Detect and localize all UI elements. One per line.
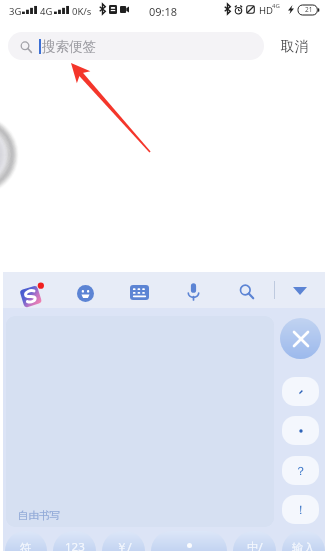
staticText: 4G — [272, 2, 280, 10]
button[interactable]: 符 — [5, 531, 47, 551]
staticText: 123 — [65, 539, 85, 551]
button[interactable]: Hide keyboard — [289, 281, 311, 299]
staticText: 09:18 — [149, 4, 178, 19]
staticText: 符 — [20, 541, 32, 551]
button[interactable]: Emoji — [76, 284, 94, 302]
staticText: 取消 — [281, 38, 308, 55]
staticText: ！ — [295, 502, 307, 517]
button[interactable]: Comma — [282, 377, 319, 406]
button[interactable]: ！ — [282, 495, 319, 524]
button[interactable]: Voice input — [186, 282, 200, 300]
staticText: 0K/s — [72, 5, 92, 18]
button[interactable]: 输入 — [282, 531, 325, 551]
button[interactable]: 123 — [53, 531, 96, 551]
button[interactable]: 搜索便签 — [8, 32, 264, 60]
button[interactable]: Sogou input method — [19, 282, 45, 308]
button[interactable]: Search — [238, 283, 254, 299]
staticText: 自由书写 — [18, 509, 60, 522]
button[interactable]: Keyboard layout — [129, 284, 149, 300]
button[interactable]: ？ — [282, 456, 319, 485]
staticText: 21 — [305, 5, 313, 13]
button[interactable]: 中/ — [233, 531, 276, 551]
staticText: 输入 — [292, 541, 315, 551]
staticText: HD — [259, 4, 273, 17]
staticText: 4G — [40, 5, 53, 18]
button[interactable]: ￥/ — [102, 531, 145, 551]
staticText: ￥/ — [116, 539, 132, 551]
button[interactable]: Period — [282, 416, 319, 445]
staticText: 搜索便签 — [42, 38, 96, 55]
button[interactable] — [151, 531, 227, 551]
button[interactable]: 取消 — [268, 32, 320, 60]
staticText: ？ — [295, 463, 307, 478]
button[interactable]: Close keyboard — [280, 318, 321, 359]
staticText: 中/ — [247, 539, 263, 551]
staticText: 3G — [9, 5, 22, 18]
